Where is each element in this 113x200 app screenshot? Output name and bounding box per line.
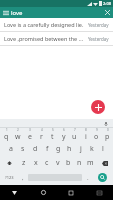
button[interactable]: Back xyxy=(0,185,29,200)
staticText: n xyxy=(77,158,82,168)
staticText: l xyxy=(102,144,104,154)
button[interactable]: s xyxy=(17,142,29,156)
staticText: t xyxy=(51,132,54,142)
button[interactable]: Love ,promised between the fin... xyxy=(0,32,113,45)
staticText: m xyxy=(87,158,94,168)
staticText: k xyxy=(90,144,94,154)
button[interactable]: n xyxy=(74,156,85,170)
button[interactable]: Switch keyboard xyxy=(85,185,113,200)
staticText: 4 xyxy=(41,128,43,132)
staticText: love xyxy=(11,9,102,17)
button[interactable]: 2 xyxy=(12,128,24,142)
button[interactable]: Clear search xyxy=(102,7,113,18)
button[interactable]: 8 xyxy=(80,128,91,142)
staticText: d xyxy=(33,144,38,154)
button[interactable]: 1 xyxy=(0,128,12,142)
staticText: y xyxy=(62,132,66,142)
staticText: s xyxy=(21,144,25,154)
staticText: w xyxy=(15,132,21,142)
button[interactable]: j xyxy=(75,142,86,156)
staticText: c xyxy=(45,158,49,168)
button[interactable]: . xyxy=(82,170,93,185)
button[interactable]: Recent apps xyxy=(57,185,85,200)
button[interactable]: z xyxy=(18,156,30,170)
staticText: f xyxy=(46,144,49,154)
staticText: Yesterday xyxy=(88,22,109,28)
staticText: 2 xyxy=(17,128,19,132)
staticText: z xyxy=(22,158,26,168)
staticText: 1 xyxy=(6,128,8,132)
button[interactable]: m xyxy=(85,156,96,170)
staticText: b xyxy=(66,158,71,168)
staticText: 5 xyxy=(52,128,54,132)
staticText: ?123 xyxy=(5,175,14,180)
staticText: 3 xyxy=(29,128,31,132)
button[interactable]: 7 xyxy=(69,128,80,142)
button[interactable]: h xyxy=(64,142,75,156)
staticText: q xyxy=(4,132,9,142)
button[interactable]: k xyxy=(86,142,97,156)
button[interactable]: Home xyxy=(29,185,57,200)
staticText: x xyxy=(34,158,38,168)
staticText: v xyxy=(56,158,60,168)
staticText: 6 xyxy=(63,128,65,132)
button[interactable]: Voice input xyxy=(102,120,110,128)
button[interactable]: 5 xyxy=(47,128,58,142)
button[interactable]: 3 xyxy=(24,128,36,142)
staticText: 8 xyxy=(85,128,87,132)
button[interactable]: Backspace xyxy=(96,156,113,170)
button[interactable]: 6 xyxy=(58,128,69,142)
button[interactable]: Add note xyxy=(91,100,105,114)
button[interactable]: b xyxy=(63,156,74,170)
button[interactable]: a xyxy=(5,142,17,156)
button[interactable]: ?123 xyxy=(1,170,17,185)
button[interactable]: v xyxy=(52,156,63,170)
button[interactable]: Search xyxy=(98,173,107,182)
staticText: p xyxy=(105,132,110,142)
staticText: e xyxy=(28,132,32,142)
button[interactable]: c xyxy=(41,156,52,170)
button[interactable]: d xyxy=(29,142,41,156)
staticText: 2:08 xyxy=(103,1,111,6)
staticText: h xyxy=(67,144,72,154)
button[interactable]: l xyxy=(97,142,108,156)
staticText: Love is a carefully designed lie. xyxy=(4,21,86,28)
staticText: 7 xyxy=(74,128,76,132)
button[interactable]: 9 xyxy=(91,128,102,142)
staticText: g xyxy=(56,144,61,154)
button[interactable]: 4 xyxy=(36,128,47,142)
button[interactable]: , xyxy=(17,170,28,185)
staticText: Yesterday xyxy=(88,36,109,42)
staticText: o xyxy=(94,132,99,142)
button[interactable]: Menu xyxy=(0,7,11,18)
staticText: . xyxy=(87,174,89,182)
button[interactable]: f xyxy=(41,142,53,156)
button[interactable]: x xyxy=(30,156,41,170)
button[interactable]: 0 xyxy=(102,128,113,142)
staticText: i xyxy=(85,132,87,142)
staticText: , xyxy=(22,174,24,182)
button[interactable]: Love is a carefully designed lie. xyxy=(0,18,113,31)
staticText: r xyxy=(40,132,43,142)
staticText: 9 xyxy=(96,128,98,132)
button[interactable]: Shift xyxy=(0,156,18,170)
staticText: a xyxy=(9,144,13,154)
staticText: u xyxy=(72,132,77,142)
button[interactable]: g xyxy=(53,142,64,156)
staticText: Love ,promised between the fin... xyxy=(4,35,86,42)
staticText: 0 xyxy=(107,128,109,132)
staticText: j xyxy=(80,144,82,154)
